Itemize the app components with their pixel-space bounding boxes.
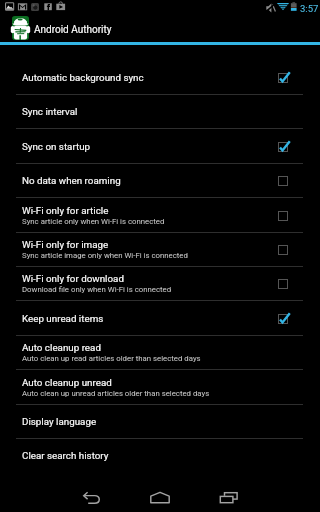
staticText: Wi-Fi only for image	[22, 239, 109, 250]
staticText: Download file only when Wi-Fi is connect…	[22, 285, 172, 294]
button[interactable]: Auto cleanup unread	[0, 371, 320, 405]
staticText: Android Authority	[34, 24, 112, 36]
staticText: No data when roaming	[22, 175, 121, 186]
staticText: Wi-Fi only for article	[22, 205, 109, 216]
button[interactable]: Sync interval	[0, 95, 320, 129]
staticText: Auto cleanup unread	[22, 377, 112, 388]
staticText: Keep unread items	[22, 313, 104, 324]
staticText: Auto cleanup read	[22, 342, 101, 353]
staticText: Auto clean up read articles older than s…	[22, 354, 201, 363]
staticText: Automatic background sync	[22, 72, 144, 83]
button[interactable]: Wi-Fi only for article	[0, 199, 320, 233]
staticText: Wi-Fi only for download	[22, 273, 124, 284]
staticText: Clear search history	[22, 450, 109, 461]
button[interactable]: Wi-Fi only for download	[0, 267, 320, 301]
button[interactable]: Keep unread items	[0, 302, 320, 336]
button[interactable]: Wi-Fi only for image	[0, 233, 320, 267]
button[interactable]: Display language	[0, 405, 320, 439]
button[interactable]: Clear search history	[0, 439, 320, 473]
button[interactable]: Auto cleanup read	[0, 336, 320, 370]
button[interactable]: Recent apps	[209, 478, 249, 512]
staticText: Auto clean up unread articles older than…	[22, 389, 210, 398]
staticText: Sync on startup	[22, 141, 91, 152]
staticText: Sync article image only when Wi-Fi is co…	[22, 251, 188, 260]
staticText: Display language	[22, 416, 97, 427]
staticText: Sync interval	[22, 106, 78, 117]
button[interactable]: Automatic background sync	[0, 61, 320, 95]
staticText: 3:57	[300, 3, 319, 14]
button[interactable]: No data when roaming	[0, 164, 320, 198]
button[interactable]: Sync on startup	[0, 130, 320, 164]
staticText: Sync article only when Wi-Fi is connecte…	[22, 217, 165, 226]
button[interactable]: Home	[140, 478, 180, 512]
button[interactable]: Android Authority	[12, 16, 29, 40]
button[interactable]: Back	[73, 479, 113, 512]
